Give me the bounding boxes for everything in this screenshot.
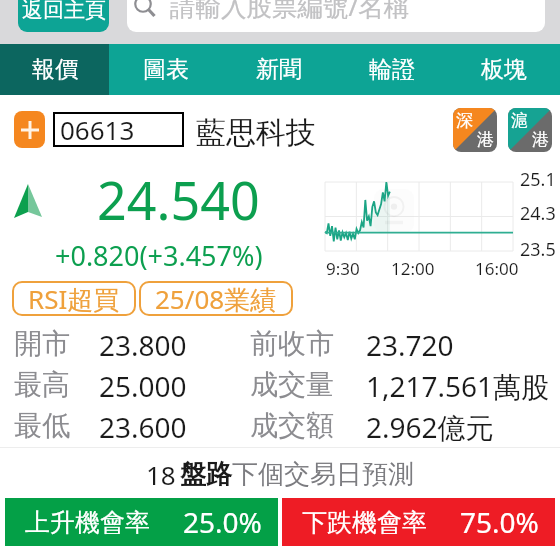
staticText: +0.820(+3.457%)	[55, 237, 263, 274]
staticText: 12:00	[391, 257, 435, 280]
staticText: 06613	[60, 112, 135, 147]
staticText: 上升機會率	[25, 507, 150, 538]
staticText: 圖表	[143, 55, 189, 84]
staticText: 滬	[511, 110, 528, 131]
button[interactable]: 報價	[0, 44, 109, 95]
button[interactable]: 新聞	[222, 44, 335, 95]
staticText: 請輸入股票編號/名稱	[170, 0, 409, 24]
staticText: 23.5	[520, 237, 556, 262]
staticText: 25.0%	[183, 503, 262, 541]
staticText: 下個交易日預測	[232, 458, 414, 491]
staticText: 前收市	[250, 326, 334, 361]
staticText: 盤路	[180, 458, 232, 491]
staticText: 成交量	[250, 367, 334, 402]
staticText: 報價	[32, 55, 78, 84]
staticText: 輪證	[369, 55, 415, 84]
staticText: 深	[456, 110, 473, 131]
staticText: 返回主頁	[22, 0, 106, 23]
staticText: 23.600	[99, 408, 187, 446]
staticText: 成交額	[250, 408, 334, 443]
staticText: 24.540	[97, 164, 260, 235]
button[interactable]: Add to watchlist	[14, 111, 45, 148]
button[interactable]: RSI超買	[28, 281, 120, 316]
staticText: 25/08業績	[155, 281, 277, 316]
staticText: 75.0%	[460, 503, 539, 541]
staticText: 23.720	[366, 326, 454, 364]
staticText: 港	[532, 129, 549, 150]
staticText: 25.000	[99, 367, 187, 405]
button[interactable]: 返回主頁	[18, 0, 109, 32]
staticText: 2.962億元	[366, 408, 494, 446]
staticText: 1,217.561萬股	[366, 367, 550, 405]
staticText: RSI超買	[28, 281, 120, 316]
staticText: 藍思科技	[196, 114, 316, 152]
button[interactable]: 輪證	[335, 44, 448, 95]
staticText: 9:30	[326, 257, 360, 280]
staticText: 25.1	[520, 167, 556, 192]
staticText: 板塊	[481, 55, 527, 84]
button[interactable]: 圖表	[109, 44, 222, 95]
staticText: 最高	[14, 367, 70, 402]
button[interactable]: 25/08業績	[155, 281, 277, 316]
button[interactable]: 上升機會率	[5, 498, 278, 546]
staticText: 開市	[14, 326, 70, 361]
button[interactable]: 請輸入股票編號/名稱	[127, 0, 545, 32]
staticText: 新聞	[256, 55, 302, 84]
staticText: 23.800	[99, 326, 187, 364]
staticText: 16:00	[475, 257, 519, 280]
staticText: 最低	[14, 408, 70, 443]
button[interactable]: 板塊	[448, 44, 560, 95]
staticText: 18	[146, 457, 176, 492]
staticText: 24.3	[520, 201, 556, 226]
button[interactable]: 滬	[508, 108, 552, 152]
button[interactable]: 深	[453, 108, 497, 152]
staticText: 港	[477, 129, 494, 150]
staticText: 下跌機會率	[302, 507, 427, 538]
button[interactable]: 下跌機會率	[282, 498, 555, 546]
